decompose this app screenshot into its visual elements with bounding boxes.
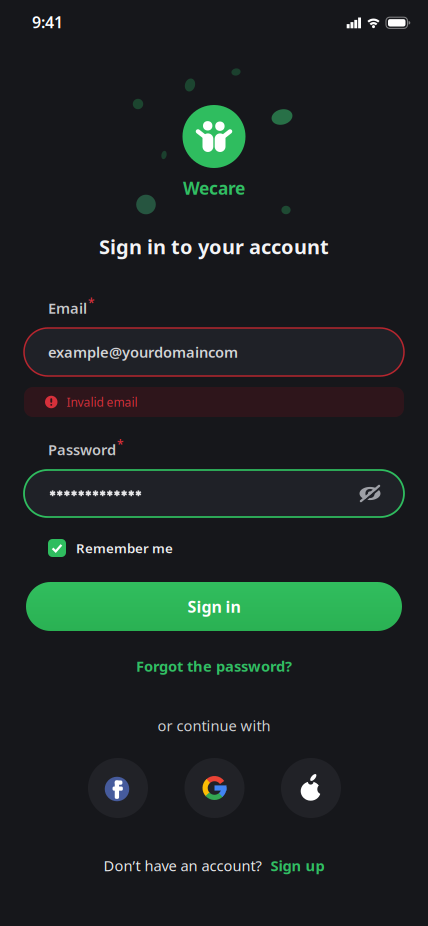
staticText: Sign up [270, 856, 324, 875]
staticText: Forgot the password? [136, 656, 292, 676]
staticText: Wecare [183, 176, 245, 199]
button[interactable]: Forgot the password? [136, 656, 292, 676]
staticText: or continue with [157, 716, 270, 735]
staticText: 9:41 [32, 11, 63, 33]
staticText: * [117, 436, 124, 452]
button[interactable]: Sign up [270, 856, 324, 875]
staticText: Invalid email [66, 394, 137, 410]
button[interactable]: example@yourdomaincom [24, 328, 404, 376]
staticText: Sign in [187, 596, 240, 617]
staticText: * [88, 295, 95, 311]
staticText: Password [48, 440, 116, 459]
button[interactable]: Sign in [26, 582, 402, 631]
staticText: Don’t have an account? [103, 856, 261, 875]
button[interactable]: Remember me [48, 539, 66, 557]
button[interactable]: Continue with Apple [281, 758, 341, 818]
staticText: Remember me [76, 539, 173, 557]
button[interactable] [24, 470, 404, 517]
button[interactable]: Continue with Google [184, 758, 244, 818]
staticText: Sign in to your account [99, 233, 329, 260]
staticText: Email [48, 298, 87, 318]
staticText: example@yourdomaincom [48, 342, 238, 362]
button[interactable]: Continue with Facebook [88, 758, 148, 818]
